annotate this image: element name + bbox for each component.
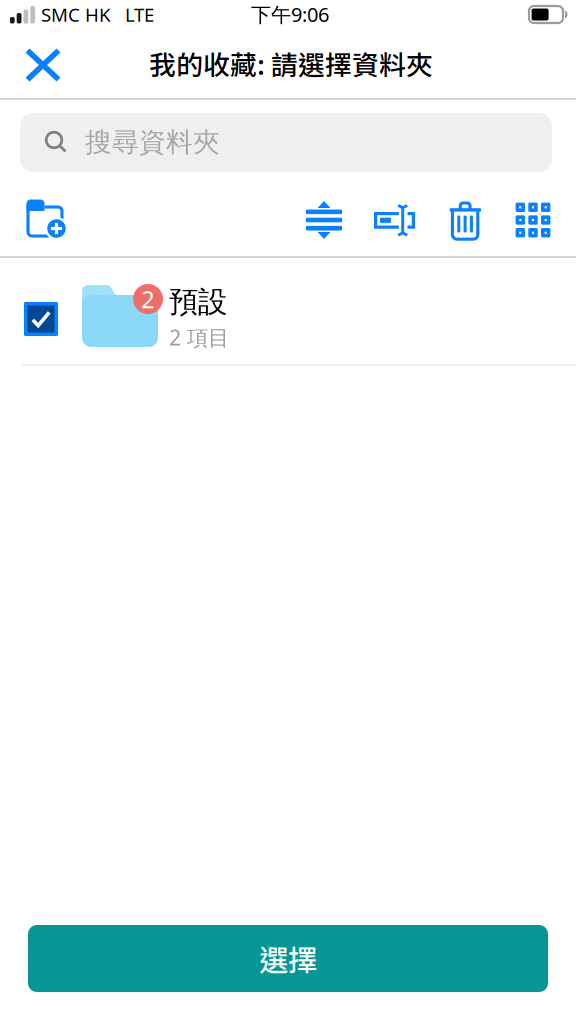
staticText: 2 項目: [169, 323, 229, 351]
staticText: 我的收藏: 請選擇資料夾: [149, 44, 433, 83]
button[interactable]: Delete: [434, 189, 496, 251]
staticText: SMC HK: [41, 2, 111, 27]
button[interactable]: Grid view: [502, 189, 564, 251]
staticText: 2: [141, 283, 155, 315]
button[interactable]: [0, 264, 576, 366]
staticText: 搜尋資料夾: [85, 126, 220, 159]
staticText: LTE: [125, 2, 154, 27]
button[interactable]: New Folder: [16, 189, 87, 260]
button[interactable]: Close: [6, 34, 80, 96]
button[interactable]: Rename: [363, 189, 425, 251]
staticText: 預設: [169, 284, 227, 320]
button[interactable]: Sort: [293, 189, 355, 251]
button[interactable]: 選擇: [28, 925, 548, 992]
staticText: 下午9:06: [251, 1, 329, 28]
staticText: 選擇: [259, 937, 317, 980]
